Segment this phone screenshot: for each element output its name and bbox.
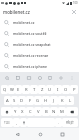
staticText: G [36,98,40,104]
staticText: mobilenet.cz [13,20,76,25]
button[interactable]: J [50,96,58,105]
staticText: N [52,109,56,115]
button[interactable]: Y [12,107,19,116]
button[interactable]: T [30,85,38,94]
staticText: P [73,87,76,93]
staticText: mobilenet.cz iphone [13,64,76,69]
staticText: H [44,98,48,104]
button[interactable]: Emoji [36,74,44,82]
button[interactable]: More options [68,74,76,82]
staticText: F [29,98,32,104]
staticText: Y [14,109,17,115]
button[interactable]: Q [1,85,8,94]
button[interactable]: , [13,118,20,127]
button[interactable]: S [11,96,18,105]
staticText: U [48,87,52,93]
button[interactable]: C [26,107,34,116]
button[interactable]: Voice input [20,118,27,127]
button[interactable]: V [34,107,42,116]
button[interactable]: Clipboard [46,74,54,82]
button[interactable]: mobilenet.cz [0,17,79,28]
staticText: W [10,87,14,93]
button[interactable]: Recent apps [56,128,68,140]
button[interactable]: . [55,118,62,127]
button[interactable]: G [34,96,42,105]
button[interactable]: Clear text [69,7,78,16]
button[interactable]: L [66,96,74,105]
staticText: mobilenet.cz snapchat [13,42,76,47]
button[interactable]: P [70,85,78,94]
button[interactable]: W [8,85,15,94]
button[interactable]: E [15,85,22,94]
staticText: mobilenet.cz soutěž [13,31,76,36]
staticText: Q [3,87,7,93]
staticText: PŘEJÍT [66,121,74,125]
button[interactable]: mobilenet.cz soutěž [0,28,79,39]
button[interactable]: K [58,96,66,105]
staticText: K [61,98,64,104]
button[interactable]: ?123 [1,118,13,127]
staticText: , [16,120,17,125]
button[interactable]: B [42,107,50,116]
button[interactable]: Home [34,128,46,140]
button[interactable]: Shift [1,107,12,116]
button[interactable]: Backspace [66,107,78,116]
staticText: 100 [73,1,78,5]
button[interactable]: GIF [25,74,33,82]
staticText: B [45,109,48,115]
button[interactable]: Stickers [14,74,22,82]
button[interactable]: U [46,85,54,94]
staticText: L [69,98,72,104]
button[interactable]: R [22,85,30,94]
staticText: D [20,98,24,104]
button[interactable]: H [42,96,50,105]
staticText: T [33,87,36,93]
staticText: A [6,98,9,104]
staticText: M [60,109,64,115]
staticText: X [21,109,24,115]
staticText: . [58,120,59,125]
staticText: I [57,87,59,93]
button[interactable]: M [58,107,66,116]
staticText: E [17,87,20,93]
staticText: O [64,87,68,93]
button[interactable]: PŘEJÍT [62,118,78,127]
button[interactable]: F [26,96,34,105]
button[interactable]: I [54,85,62,94]
button[interactable]: A [4,96,11,105]
staticText: R [25,87,28,93]
button[interactable]: mobilenet.cz iphone [0,61,79,72]
button[interactable]: Back [11,128,23,140]
button[interactable]: mobilenet.cz recenze [0,50,79,61]
button[interactable]: D [18,96,26,105]
staticText: C [29,109,32,115]
staticText: V [37,109,40,115]
staticText: mobilenet.cz recenze [13,53,76,58]
staticText: S [13,98,16,104]
button[interactable]: mobilenet.cz snapchat [0,39,79,50]
button[interactable]: Z [38,85,46,94]
button[interactable]: Google Search [3,74,11,82]
button[interactable]: O [62,85,70,94]
staticText: mobilenet.cz [3,9,69,15]
staticText: J [53,98,55,104]
button[interactable]: N [50,107,58,116]
staticText: ?123 [4,121,10,125]
button[interactable]: X [19,107,26,116]
button[interactable]: Settings [57,74,65,82]
staticText: Z [41,87,44,93]
